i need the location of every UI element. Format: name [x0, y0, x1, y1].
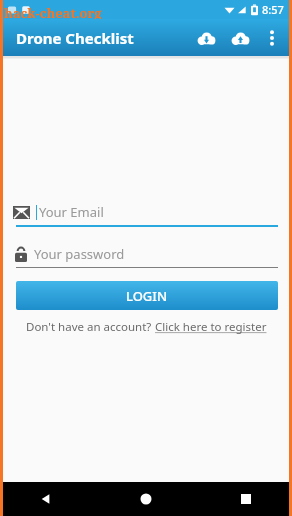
button[interactable]: More options [257, 23, 287, 53]
staticText: Drone Checklist [16, 28, 134, 48]
staticText: 8:57 [262, 2, 284, 17]
button[interactable]: Upload [223, 21, 257, 55]
button[interactable]: Your Email [13, 199, 279, 225]
button[interactable]: Back [29, 482, 63, 516]
staticText: hack-cheat.org [4, 4, 102, 22]
button[interactable]: Download [189, 21, 223, 55]
button[interactable]: Your password [13, 241, 279, 267]
button[interactable]: Home [129, 482, 163, 516]
button[interactable]: Recent apps [229, 482, 263, 516]
button[interactable]: Click here to register [155, 319, 267, 335]
staticText: LOGIN [126, 287, 168, 305]
button[interactable]: LOGIN [16, 281, 278, 310]
staticText: Your Email [39, 203, 104, 221]
staticText: Your password [34, 245, 125, 263]
staticText: Click here to register [155, 319, 267, 335]
staticText: Don't have an account? [26, 319, 155, 335]
